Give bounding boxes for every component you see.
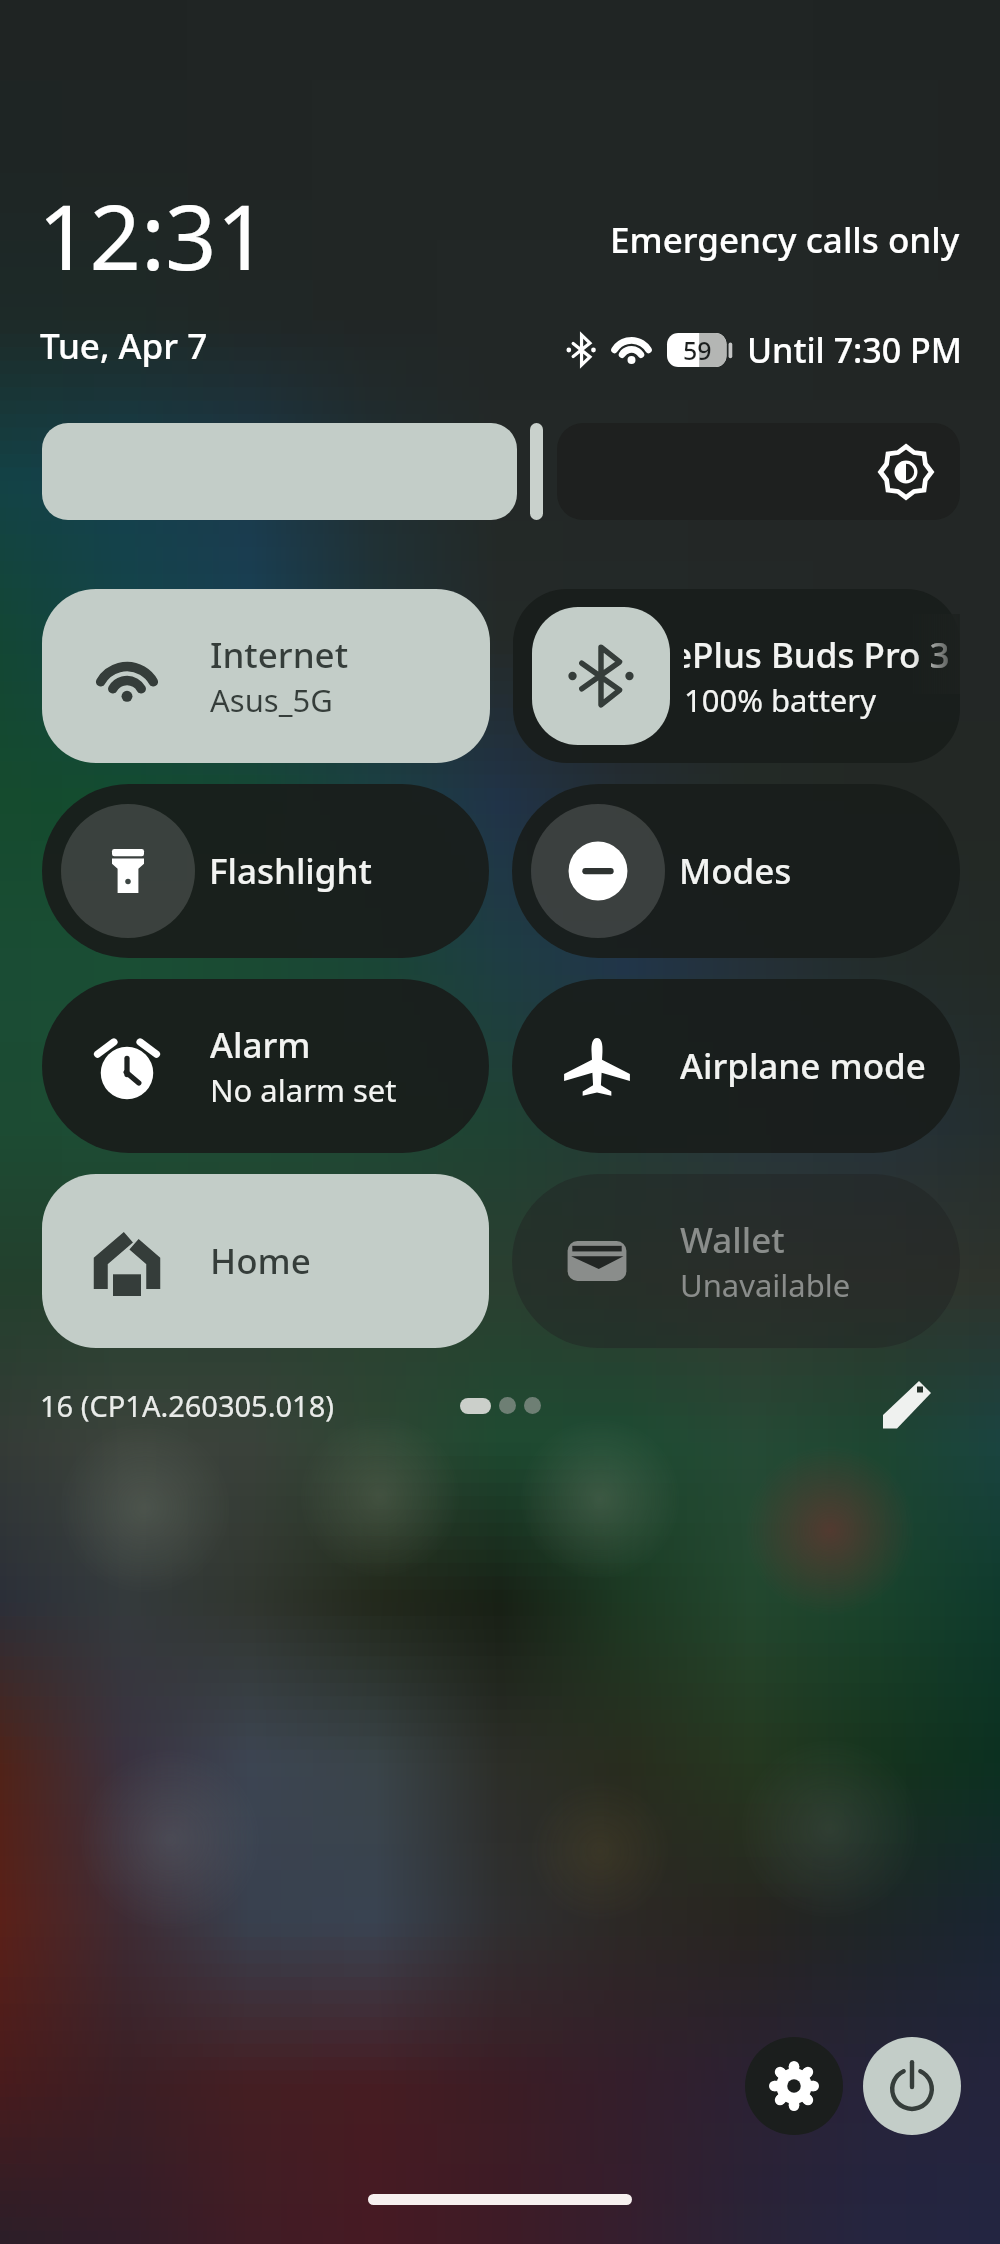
button[interactable]: Brightness (42, 423, 517, 520)
staticText: Modes (679, 847, 792, 895)
staticText: Home (210, 1237, 311, 1285)
staticText: Until 7:30 PM (747, 327, 963, 373)
staticText: Airplane mode (680, 1042, 926, 1090)
button[interactable]: Power (863, 2037, 961, 2135)
staticText: 12:31 (38, 174, 269, 297)
staticText: 100% battery (684, 679, 876, 721)
button[interactable]: Airplane mode (512, 979, 960, 1153)
button[interactable]: Flashlight (42, 784, 489, 958)
staticText: ePlus Buds Pro 3 (684, 631, 948, 679)
button[interactable]: Home (42, 1174, 489, 1348)
staticText: Alarm (210, 1021, 311, 1069)
staticText: Unavailable (680, 1264, 851, 1306)
button[interactable]: Settings (745, 2037, 843, 2135)
staticText: Flashlight (209, 847, 372, 895)
staticText: Tue, Apr 7 (40, 322, 208, 370)
button[interactable]: Edit tiles (876, 1375, 938, 1435)
button[interactable]: Wallet (512, 1174, 960, 1348)
staticText: No alarm set (210, 1069, 397, 1111)
button[interactable]: Auto brightness (557, 423, 960, 520)
staticText: Asus_5G (210, 679, 333, 721)
staticText: Wallet (680, 1216, 785, 1264)
button[interactable]: Alarm (42, 979, 489, 1153)
button[interactable]: ePlus Buds Pro 3 (513, 589, 960, 763)
staticText: 16 (CP1A.260305.018) (40, 1386, 334, 1425)
button[interactable]: Internet (42, 589, 490, 763)
button[interactable]: Modes (512, 784, 960, 958)
staticText: Internet (210, 631, 349, 679)
staticText: 59 (683, 333, 712, 367)
staticText: Emergency calls only (610, 216, 960, 264)
